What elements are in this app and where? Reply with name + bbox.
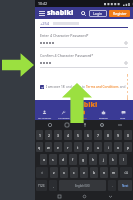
other: Betslip	[81, 110, 86, 115]
staticText: s	[52, 157, 54, 162]
button[interactable]: 4	[64, 130, 72, 140]
staticText: k	[112, 157, 114, 162]
other: Promos	[101, 110, 106, 115]
button[interactable]: t	[74, 142, 82, 152]
other: Show password	[124, 41, 128, 45]
button[interactable]: h	[89, 154, 97, 165]
button[interactable]: ⌫	[120, 167, 132, 178]
staticText: and	[119, 85, 127, 89]
button[interactable]: 1	[36, 130, 43, 140]
button[interactable]: Register	[109, 10, 130, 17]
button[interactable]: q	[36, 142, 43, 152]
button[interactable]: Keyboard tool 3	[81, 121, 88, 128]
button[interactable]: A-Z Sports	[54, 109, 73, 120]
button[interactable]: u	[94, 142, 102, 152]
button[interactable]: Next	[118, 180, 132, 191]
button[interactable]: .	[108, 180, 116, 191]
button[interactable]: My Account	[35, 109, 54, 120]
staticText: 10:42	[38, 1, 47, 6]
staticText: ?123	[38, 184, 45, 188]
other: Scroll up	[62, 83, 92, 123]
button[interactable]: 3	[54, 130, 62, 140]
button[interactable]: Keyboard tool 2	[63, 121, 70, 128]
staticText: Chat	[120, 116, 126, 119]
button[interactable]: w	[45, 142, 52, 152]
button[interactable]: Terms and Conditions	[86, 85, 119, 89]
button[interactable]: ⇧	[36, 167, 48, 178]
staticText: A-Z Sports	[58, 116, 70, 119]
staticText: I am over 18	[46, 85, 66, 89]
staticText: a	[43, 157, 45, 162]
other: Chat	[121, 110, 126, 115]
button[interactable]: j	[99, 154, 107, 165]
button[interactable]: d	[59, 154, 67, 165]
staticText: English (UK)	[75, 184, 90, 188]
staticText: 1	[39, 133, 41, 138]
button[interactable]: r	[64, 142, 72, 152]
button[interactable]: a	[40, 154, 47, 165]
button[interactable]: Chat	[113, 109, 133, 120]
button[interactable]: Login	[89, 10, 107, 17]
button[interactable]: English (UK)	[59, 180, 106, 191]
button[interactable]: 7	[94, 130, 102, 140]
staticText: r	[67, 145, 69, 150]
other: Show password	[124, 61, 128, 65]
other: Next step	[2, 52, 34, 78]
staticText: q	[38, 145, 41, 150]
button[interactable]: 2	[45, 130, 52, 140]
button[interactable]: 0	[124, 130, 132, 140]
button[interactable]: Back	[108, 194, 112, 198]
button[interactable]: i	[104, 142, 112, 152]
button[interactable]: y	[84, 142, 92, 152]
staticText: Next	[122, 184, 129, 188]
staticText: o	[117, 145, 120, 150]
button[interactable]: Betslip	[73, 109, 93, 120]
staticText: 2	[48, 133, 50, 138]
button[interactable]: z	[50, 167, 58, 178]
button[interactable]: x	[60, 167, 68, 178]
button[interactable]: o	[114, 142, 122, 152]
button[interactable]: I am over 18	[40, 74, 128, 100]
button[interactable]: Promos	[93, 109, 113, 120]
button[interactable]: 6	[84, 130, 92, 140]
button[interactable]: Keyboard tool 4	[98, 121, 105, 128]
staticText: 0	[127, 133, 129, 138]
button[interactable]: 9	[114, 130, 122, 140]
button[interactable]: 8	[104, 130, 112, 140]
button[interactable]: 5	[74, 130, 82, 140]
button[interactable]: f	[69, 154, 77, 165]
button[interactable]: p	[124, 142, 132, 152]
button[interactable]: b	[90, 167, 98, 178]
button[interactable]: k	[109, 154, 117, 165]
staticText: t	[77, 145, 79, 150]
button[interactable]: s	[49, 154, 57, 165]
button[interactable]: m	[110, 167, 118, 178]
button[interactable]: ?123	[36, 180, 47, 191]
staticText: Login	[93, 11, 103, 16]
button[interactable]: Home	[82, 194, 86, 198]
staticText: 6	[87, 133, 89, 138]
button[interactable]: e	[54, 142, 62, 152]
staticText: ,	[53, 184, 54, 188]
staticText: y	[87, 145, 89, 150]
staticText: 4	[67, 133, 69, 138]
button[interactable]: ,	[49, 180, 57, 191]
button[interactable]: Recents	[57, 194, 61, 198]
button[interactable]: shabiki	[47, 8, 74, 18]
button[interactable]: Privacy Policy	[127, 74, 128, 100]
button[interactable]: n	[100, 167, 108, 178]
staticText: v	[83, 170, 85, 175]
button[interactable]: v	[80, 167, 88, 178]
staticText: 9	[117, 133, 119, 138]
button[interactable]: c	[70, 167, 78, 178]
button[interactable]: l	[119, 154, 127, 165]
button[interactable]: Menu	[38, 10, 45, 17]
button[interactable]: Keyboard tool 1	[46, 121, 53, 128]
button[interactable]: Search	[79, 9, 87, 17]
staticText: ⌫	[124, 171, 129, 174]
staticText: Promos	[99, 116, 108, 119]
button[interactable]: Keyboard tool 5	[116, 121, 123, 128]
staticText: Enter 4 Character Password*	[40, 33, 89, 38]
staticText: +254	[40, 21, 50, 26]
button[interactable]: g	[79, 154, 87, 165]
